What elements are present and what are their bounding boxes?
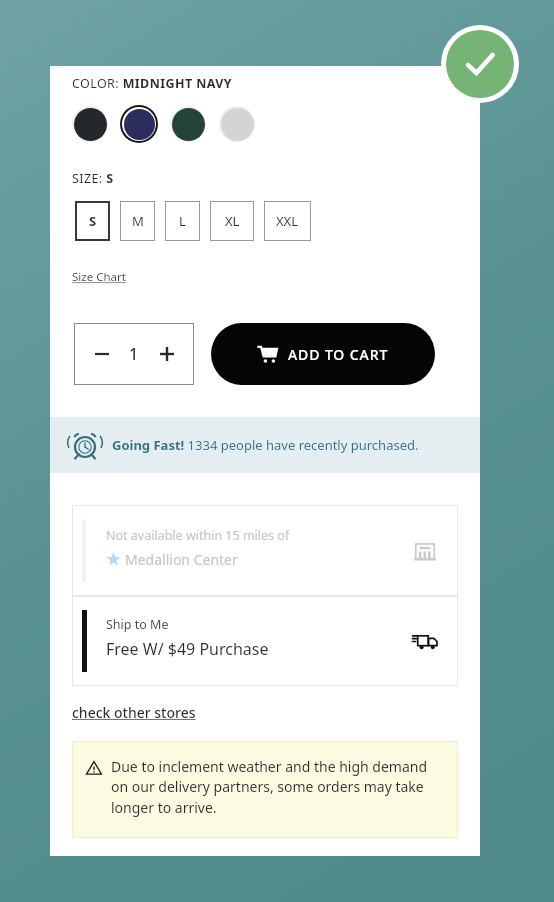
button[interactable]: [119, 104, 159, 144]
staticText: Size Chart: [72, 269, 126, 285]
staticText: ADD TO CART: [288, 345, 389, 364]
staticText: S: [89, 212, 97, 230]
staticText: Ship to Me: [106, 616, 169, 633]
button[interactable]: [70, 104, 110, 144]
staticText: Medallion Center: [125, 550, 238, 569]
button[interactable]: [168, 104, 208, 144]
button[interactable]: Added successfully: [441, 25, 519, 103]
button[interactable]: M: [120, 201, 155, 241]
staticText: check other stores: [72, 703, 196, 722]
button[interactable]: Ship to Me: [72, 596, 458, 686]
button[interactable]: L: [165, 201, 200, 241]
staticText: XXL: [276, 212, 299, 230]
button[interactable]: ADD TO CART: [211, 323, 435, 385]
staticText: SIZE: S: [72, 170, 114, 187]
staticText: 1: [129, 343, 139, 365]
button[interactable]: Not available within 15 miles of: [72, 505, 458, 596]
button[interactable]: Decrease quantity: [74, 323, 194, 385]
button[interactable]: [217, 104, 257, 144]
staticText: M: [132, 212, 144, 230]
staticText: Not available within 15 miles of: [106, 527, 290, 544]
staticText: Free W/ $49 Purchase: [106, 638, 269, 660]
staticText: Going Fast! 1334 people have recently pu…: [112, 436, 419, 454]
staticText: L: [179, 212, 186, 230]
button[interactable]: check other stores: [72, 703, 196, 722]
staticText: COLOR: MIDNIGHT NAVY: [72, 75, 233, 92]
button[interactable]: XXL: [264, 201, 311, 241]
button[interactable]: Size Chart: [72, 269, 126, 285]
other: Increase quantity: [155, 342, 179, 366]
button[interactable]: XL: [210, 201, 254, 241]
button[interactable]: S: [75, 201, 110, 241]
staticText: Due to inclement weather and the high de…: [111, 757, 446, 818]
staticText: XL: [225, 212, 240, 230]
other: Decrease quantity: [90, 342, 114, 366]
